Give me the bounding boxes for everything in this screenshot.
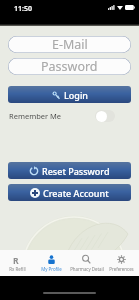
staticText: Remember Me bbox=[9, 111, 62, 121]
button[interactable]: E-Mail bbox=[8, 36, 131, 53]
staticText: Login bbox=[64, 89, 88, 101]
staticText: Pharmacy Detail bbox=[70, 266, 104, 272]
staticText: Password bbox=[41, 58, 98, 75]
staticText: Rx Refill bbox=[9, 266, 26, 272]
button[interactable]: Pharmacy Detail bbox=[69, 250, 104, 276]
staticText: Create Account bbox=[43, 187, 109, 199]
button[interactable]: Preferences bbox=[104, 250, 139, 276]
button[interactable]: Login bbox=[8, 86, 131, 103]
staticText: My Profile bbox=[41, 266, 62, 272]
button[interactable] bbox=[95, 110, 115, 122]
staticText: Preferences bbox=[109, 266, 134, 272]
button[interactable]: Password bbox=[8, 58, 131, 75]
staticText: Reset Password bbox=[42, 165, 110, 177]
staticText: Rx bbox=[13, 255, 22, 264]
button[interactable]: Reset Password bbox=[8, 162, 131, 179]
staticText: E-Mail bbox=[52, 36, 88, 53]
button[interactable]: My Profile bbox=[34, 250, 69, 276]
staticText: 11:50 bbox=[14, 4, 32, 14]
button[interactable]: Create Account bbox=[8, 184, 131, 201]
button[interactable]: Rx bbox=[0, 250, 34, 276]
